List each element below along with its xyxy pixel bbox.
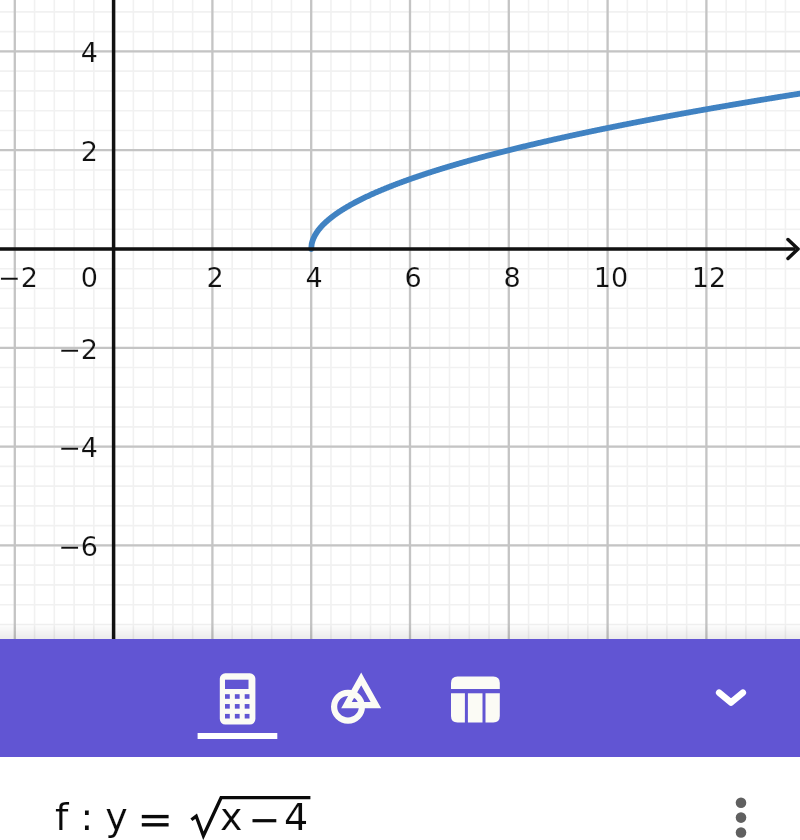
button[interactable]: Table: [427, 639, 523, 757]
staticText: 4: [284, 795, 309, 839]
staticText: 4: [38, 37, 98, 77]
staticText: x: [220, 795, 243, 839]
button[interactable]: Geometry: [300, 639, 396, 757]
button[interactable]: Calculator: [190, 639, 285, 757]
staticText: 4: [284, 262, 344, 302]
staticText: 0: [38, 262, 98, 302]
staticText: 8: [482, 262, 542, 302]
staticText: f : y: [55, 795, 128, 839]
staticText: −6: [38, 531, 98, 571]
button[interactable]: Collapse panel: [686, 639, 776, 757]
button[interactable]: More options: [718, 780, 764, 840]
staticText: 6: [383, 262, 443, 302]
staticText: −2: [0, 262, 48, 302]
staticText: 12: [679, 262, 739, 302]
staticText: 10: [581, 262, 641, 302]
staticText: −4: [38, 432, 98, 472]
staticText: 2: [38, 136, 98, 176]
staticText: −2: [38, 334, 98, 374]
staticText: 2: [185, 262, 245, 302]
